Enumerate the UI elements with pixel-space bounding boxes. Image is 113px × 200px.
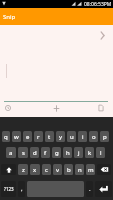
staticText: l xyxy=(100,149,102,157)
button[interactable]: a xyxy=(6,147,16,158)
staticText: ?123 xyxy=(4,186,14,192)
staticText: v xyxy=(56,166,60,174)
button[interactable]: i xyxy=(78,131,87,142)
staticText: n xyxy=(78,166,82,174)
button[interactable] xyxy=(95,181,112,197)
button[interactable]: s xyxy=(18,147,28,158)
button[interactable]: z xyxy=(18,164,28,175)
staticText: r xyxy=(37,133,40,141)
button[interactable]: o xyxy=(89,131,98,142)
staticText: p xyxy=(103,133,107,141)
button[interactable]: y xyxy=(56,131,65,142)
staticText: q xyxy=(4,133,8,141)
button[interactable]: x xyxy=(30,164,40,175)
button[interactable]: m xyxy=(86,164,95,175)
button[interactable]: Add note xyxy=(50,103,62,113)
button[interactable]: h xyxy=(63,147,72,158)
button[interactable]: ?123 xyxy=(1,181,16,197)
button[interactable]: k xyxy=(85,147,94,158)
button[interactable]: b xyxy=(64,164,73,175)
button[interactable]: p xyxy=(100,131,109,142)
button[interactable]: q xyxy=(2,131,10,142)
button[interactable]: t xyxy=(45,131,54,142)
staticText: 08:06:53PM xyxy=(84,1,112,8)
staticText: a xyxy=(9,149,13,157)
button[interactable]: , xyxy=(18,181,25,197)
button[interactable]: d xyxy=(30,147,39,158)
button[interactable]: Documents xyxy=(95,103,107,113)
staticText: w xyxy=(14,133,19,141)
button[interactable]: v xyxy=(53,164,62,175)
staticText: k xyxy=(88,149,92,157)
staticText: Snip xyxy=(3,13,16,21)
staticText: f xyxy=(44,149,47,157)
staticText: e xyxy=(26,133,30,141)
staticText: y xyxy=(59,133,63,141)
staticText: h xyxy=(66,149,70,157)
staticText: u xyxy=(70,133,74,141)
button[interactable]: f xyxy=(41,147,50,158)
staticText: i xyxy=(82,133,84,141)
button[interactable]: j xyxy=(74,147,83,158)
button[interactable]: c xyxy=(42,164,51,175)
staticText: . xyxy=(89,185,91,193)
staticText: x xyxy=(33,166,37,174)
staticText: , xyxy=(21,185,23,193)
staticText: j xyxy=(78,149,80,157)
button[interactable]: n xyxy=(75,164,84,175)
staticText: m xyxy=(88,166,94,174)
staticText: c xyxy=(45,166,48,174)
staticText: z xyxy=(22,166,25,174)
staticText: o xyxy=(92,133,96,141)
staticText: d xyxy=(33,149,37,157)
staticText: t xyxy=(48,133,51,141)
button[interactable]: Recent xyxy=(2,103,14,113)
staticText: g xyxy=(55,149,59,157)
staticText: s xyxy=(22,149,25,157)
button[interactable]: w xyxy=(12,131,21,142)
staticText: b xyxy=(67,166,71,174)
button[interactable] xyxy=(1,164,16,175)
button[interactable]: g xyxy=(52,147,61,158)
button[interactable]: e xyxy=(23,131,32,142)
button[interactable]: . xyxy=(86,181,93,197)
button[interactable] xyxy=(97,164,111,175)
button[interactable]: r xyxy=(34,131,43,142)
button[interactable]: Expand xyxy=(96,29,108,41)
button[interactable]: l xyxy=(96,147,105,158)
button[interactable]: u xyxy=(67,131,76,142)
